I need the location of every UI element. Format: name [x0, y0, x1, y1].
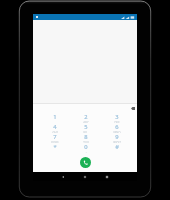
- button[interactable]: 5: [70, 123, 101, 133]
- button[interactable]: 1: [39, 113, 70, 123]
- staticText: WXYZ: [113, 141, 121, 143]
- button[interactable]: Back: [58, 172, 68, 181]
- button[interactable]: Home: [80, 172, 90, 181]
- button[interactable]: Recents: [102, 172, 112, 181]
- button[interactable]: 6: [101, 123, 132, 133]
- staticText: PQRS: [51, 141, 59, 143]
- button[interactable]: #: [101, 143, 132, 153]
- staticText: MNO: [113, 131, 121, 133]
- staticText: 1: [53, 113, 57, 121]
- button[interactable]: 3: [101, 113, 132, 123]
- button[interactable]: 8: [70, 133, 101, 143]
- button[interactable]: 0: [70, 143, 101, 153]
- button[interactable]: 9: [101, 133, 132, 143]
- button[interactable]: Backspace: [127, 103, 139, 113]
- staticText: GHI: [52, 131, 58, 133]
- staticText: ABC: [83, 121, 89, 123]
- staticText: 0: [84, 143, 88, 151]
- staticText: 2: [84, 113, 88, 121]
- staticText: #: [115, 143, 119, 151]
- button[interactable]: 2: [70, 113, 101, 123]
- staticText: JKL: [83, 131, 88, 133]
- staticText: 3: [115, 113, 119, 121]
- staticText: *: [53, 143, 57, 151]
- button[interactable]: 4: [39, 123, 70, 133]
- button[interactable]: 7: [39, 133, 70, 143]
- staticText: 9: [115, 133, 119, 141]
- button[interactable]: *: [39, 143, 70, 153]
- staticText: TUV: [83, 141, 89, 143]
- staticText: 5: [84, 123, 88, 131]
- staticText: 8: [84, 133, 88, 141]
- staticText: 4: [53, 123, 57, 131]
- staticText: 6: [115, 123, 119, 131]
- staticText: DEF: [114, 121, 120, 123]
- staticText: 7: [53, 133, 57, 141]
- staticText: +: [85, 151, 87, 153]
- button[interactable]: Call: [80, 157, 91, 168]
